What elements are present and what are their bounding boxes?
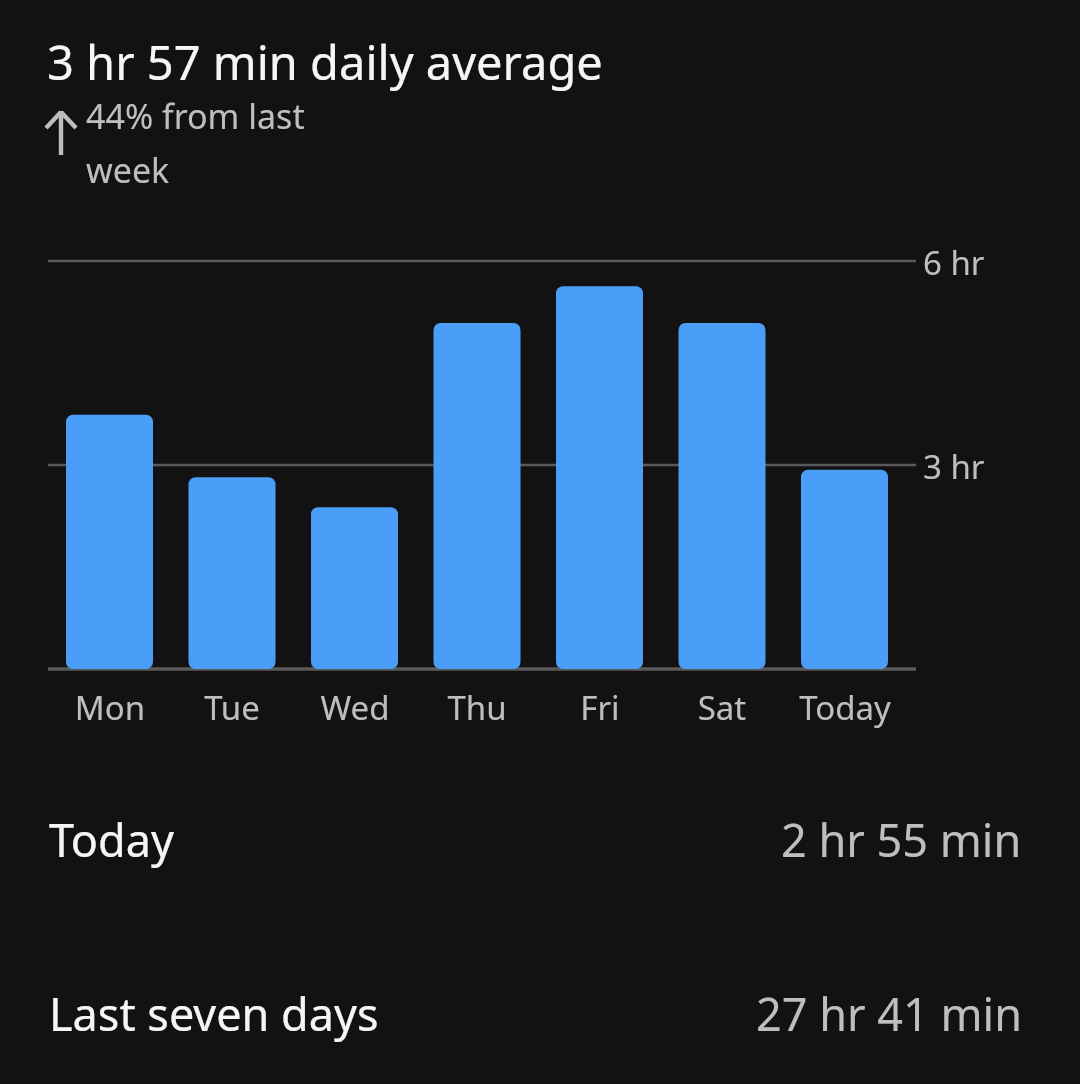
staticText: Mon [49, 685, 171, 730]
staticText: 6 hr [923, 240, 985, 285]
button[interactable]: Today [0, 805, 1080, 873]
staticText: Wed [294, 685, 416, 730]
staticText: Last seven days [49, 983, 379, 1044]
staticText: 3 hr 57 min daily average [47, 30, 603, 94]
staticText: Fri [539, 685, 661, 730]
staticText: 3 hr [923, 444, 985, 489]
staticText: 44% from last [86, 93, 305, 139]
button[interactable]: 6 hr [0, 200, 1080, 730]
button[interactable]: Trending up 44 percent from last week [38, 100, 84, 162]
staticText: Today [784, 685, 906, 730]
staticText: week [86, 147, 170, 193]
staticText: Thu [416, 685, 538, 730]
button[interactable]: Last seven days [0, 979, 1080, 1047]
staticText: Today [49, 809, 174, 870]
staticText: 2 hr 55 min [781, 809, 1022, 870]
staticText: 27 hr 41 min [756, 983, 1022, 1044]
staticText: Tue [171, 685, 293, 730]
staticText: Sat [661, 685, 783, 730]
